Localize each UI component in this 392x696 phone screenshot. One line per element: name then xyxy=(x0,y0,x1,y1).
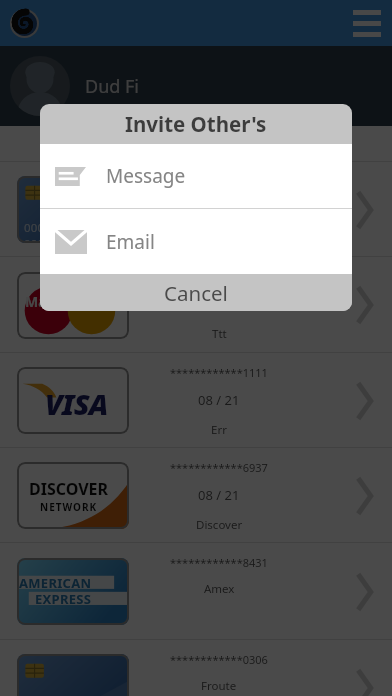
staticText: 08 / 21 xyxy=(198,391,240,409)
button[interactable]: 0000 XXXX XXXX 0000 xyxy=(0,162,392,257)
button[interactable]: AMERICAN xyxy=(0,543,392,640)
staticText: Invite Other's xyxy=(125,110,267,138)
staticText: Froute xyxy=(201,678,237,694)
button[interactable]: MasterCard xyxy=(0,257,392,353)
staticText: ************8431 xyxy=(170,555,268,570)
staticText: Dud Fi xyxy=(85,74,139,99)
staticText: Discover xyxy=(196,517,243,533)
staticText: Ttt xyxy=(212,326,227,342)
staticText: 0000 XXXX XXXX 0000 xyxy=(24,220,129,243)
staticText: VISA xyxy=(45,384,108,423)
staticText: Err xyxy=(211,422,227,438)
staticText: Message xyxy=(106,163,186,189)
staticText: DISCOVER xyxy=(29,478,109,500)
button[interactable]: App logo xyxy=(10,9,39,38)
button[interactable]: Email xyxy=(40,209,352,274)
staticText: ************0306 xyxy=(170,652,268,667)
button[interactable]: Message xyxy=(40,144,352,208)
staticText: xx/xx xyxy=(203,200,236,218)
button[interactable]: Cancel xyxy=(40,274,352,311)
staticText: ************1111 xyxy=(170,365,268,380)
staticText: NETWORK xyxy=(40,500,98,514)
button[interactable]: 0000 XXXX XXXX 0000 xyxy=(0,640,392,696)
staticText: MasterCard xyxy=(25,292,107,311)
staticText: Cancel xyxy=(164,279,228,307)
staticText: ************6666 xyxy=(170,269,268,284)
button[interactable]: VISA xyxy=(0,353,392,448)
staticText: AMERICAN xyxy=(19,574,92,592)
staticText: 08 / 21 xyxy=(198,486,240,504)
staticText: EXPRESS xyxy=(35,590,92,608)
button[interactable]: Dud Fi xyxy=(0,46,392,126)
staticText: ************0306 xyxy=(170,174,268,189)
button[interactable]: Menu xyxy=(353,10,381,37)
staticText: ************6937 xyxy=(170,460,268,475)
staticText: 08 / 21 xyxy=(198,295,240,313)
button[interactable]: DISCOVER xyxy=(0,448,392,543)
staticText: Email xyxy=(106,229,155,255)
staticText: Amex xyxy=(204,581,235,597)
